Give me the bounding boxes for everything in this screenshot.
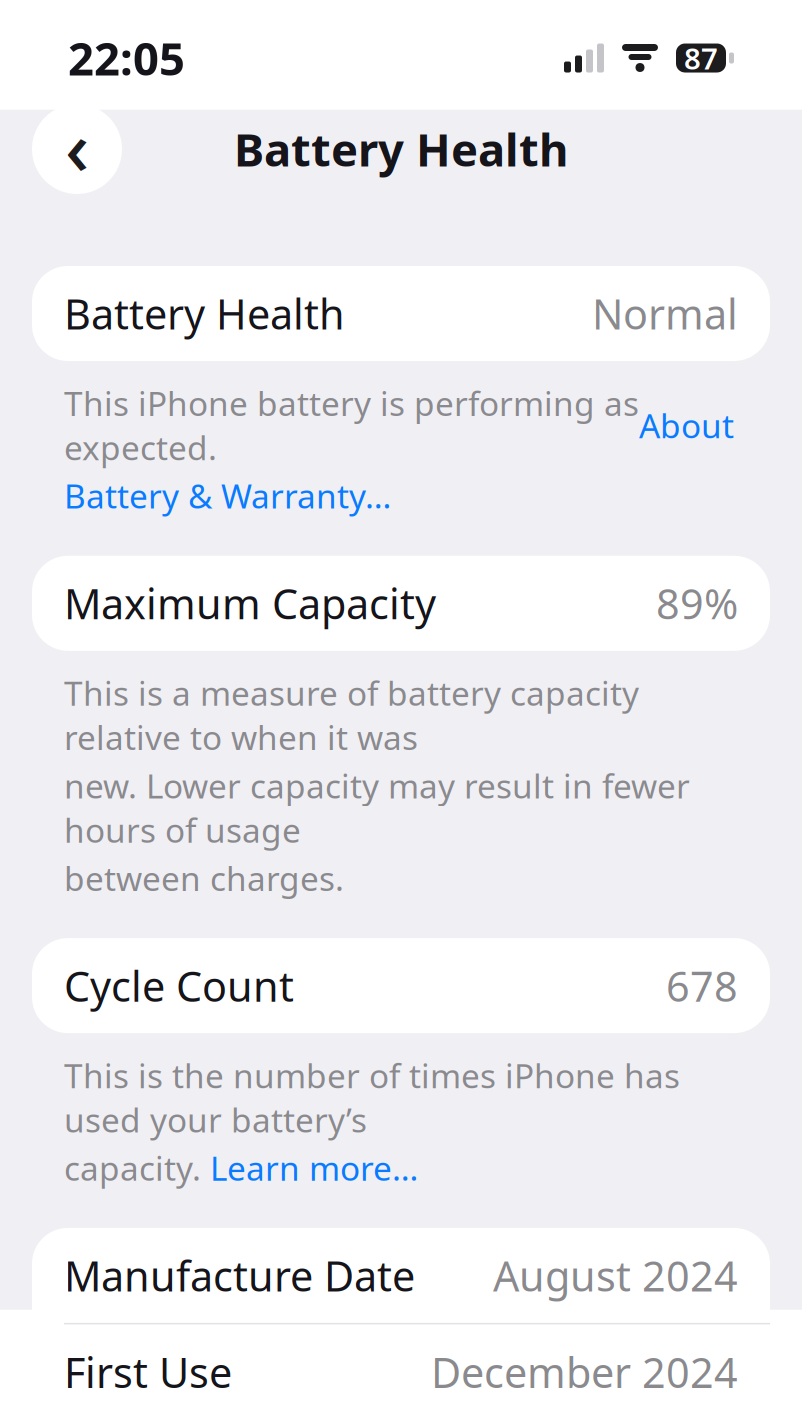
- staticText: First Use: [64, 1344, 232, 1399]
- staticText: This is the number of times iPhone has u…: [64, 1053, 680, 1142]
- staticText: 89%: [656, 576, 738, 631]
- staticText: Battery Health: [64, 286, 345, 341]
- staticText: Maximum Capacity: [64, 576, 436, 631]
- staticText: ‹: [65, 96, 89, 196]
- staticText: Battery Health: [234, 119, 568, 179]
- staticText: 22:05: [68, 28, 185, 88]
- staticText: December 2024: [431, 1344, 738, 1399]
- staticText: Normal: [592, 286, 738, 341]
- staticText: 87: [684, 38, 718, 77]
- staticText: between charges.: [64, 856, 344, 900]
- staticText: Learn more…: [210, 1146, 418, 1190]
- staticText: new. Lower capacity may result in fewer …: [64, 763, 690, 852]
- staticText: This iPhone battery is performing as exp…: [64, 381, 639, 469]
- staticText: Battery & Warranty…: [64, 473, 391, 518]
- staticText: capacity.: [64, 1146, 210, 1190]
- staticText: This is a measure of battery capacity re…: [64, 671, 639, 759]
- staticText: Manufacture Date: [64, 1248, 415, 1303]
- staticText: 678: [666, 958, 738, 1013]
- staticText: Cycle Count: [64, 958, 294, 1013]
- staticText: About: [639, 403, 734, 447]
- button[interactable]: Back: [32, 104, 122, 194]
- staticText: August 2024: [493, 1248, 738, 1303]
